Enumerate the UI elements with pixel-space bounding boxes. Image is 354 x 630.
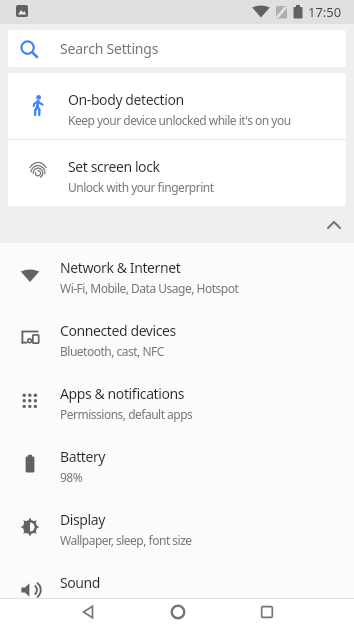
staticText: Wi-Fi, Mobile, Data Usage, Hotspot bbox=[60, 280, 239, 296]
button[interactable]: Display bbox=[0, 495, 354, 558]
staticText: Keep your device unlocked while it's on … bbox=[68, 112, 291, 128]
button[interactable]: Apps & notifications bbox=[0, 369, 354, 432]
button[interactable]: Connected devices bbox=[0, 306, 354, 369]
staticText: Set screen lock bbox=[68, 157, 160, 176]
button[interactable]: On-body detection bbox=[8, 73, 346, 139]
button[interactable] bbox=[222, 598, 311, 630]
staticText: On-body detection bbox=[68, 90, 184, 109]
button[interactable] bbox=[0, 206, 354, 243]
staticText: 17:50 bbox=[308, 3, 342, 21]
staticText: 98% bbox=[60, 469, 83, 485]
staticText: Sound bbox=[60, 573, 101, 592]
button[interactable]: Sound bbox=[0, 558, 354, 598]
staticText: Network & Internet bbox=[60, 258, 181, 277]
button[interactable]: Search Settings bbox=[8, 30, 346, 67]
button[interactable] bbox=[133, 598, 222, 630]
button[interactable] bbox=[44, 598, 133, 630]
button[interactable]: Battery bbox=[0, 432, 354, 495]
staticText: Permissions, default apps bbox=[60, 406, 193, 422]
staticText: Unlock with your fingerprint bbox=[68, 179, 214, 195]
staticText: Connected devices bbox=[60, 321, 176, 340]
staticText: Bluetooth, cast, NFC bbox=[60, 343, 164, 359]
staticText: Apps & notifications bbox=[60, 384, 185, 403]
staticText: Wallpaper, sleep, font size bbox=[60, 532, 192, 548]
button[interactable]: Network & Internet bbox=[0, 243, 354, 306]
staticText: Display bbox=[60, 510, 105, 529]
button[interactable]: Set screen lock bbox=[8, 140, 346, 206]
staticText: Search Settings bbox=[60, 39, 159, 58]
staticText: Battery bbox=[60, 447, 106, 466]
